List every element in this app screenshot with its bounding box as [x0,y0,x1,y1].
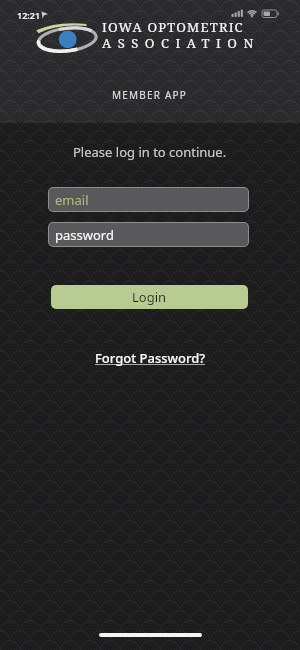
button[interactable]: Login [51,285,248,309]
staticText: password [55,226,114,244]
staticText: ASSOCIATION [102,34,260,52]
button[interactable]: password [48,222,249,247]
button[interactable]: email [48,187,249,212]
staticText: Login [132,288,167,306]
staticText: 12:21 [17,9,41,21]
staticText: email [55,191,89,209]
staticText: MEMBER APP [112,88,188,102]
staticText: Please log in to continue. [73,143,227,161]
staticText: IOWA OPTOMETRIC [102,18,244,36]
button[interactable]: Forgot Password? [95,349,206,367]
